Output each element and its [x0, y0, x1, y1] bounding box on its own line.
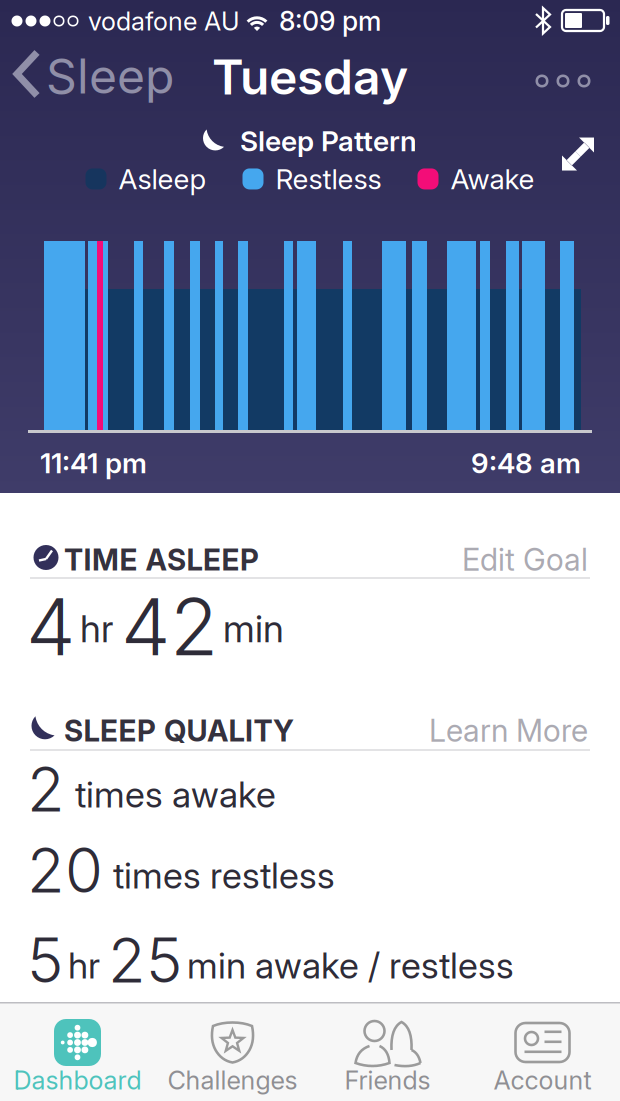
button[interactable]: Expand chart [560, 136, 596, 172]
staticText: Learn More [429, 712, 588, 749]
staticText: Sleep Pattern [240, 124, 417, 158]
staticText: times awake [75, 773, 276, 816]
button[interactable]: Sleep [12, 48, 142, 104]
staticText: Asleep [118, 162, 206, 196]
staticText: Awake [450, 162, 534, 196]
staticText: SLEEP QUALITY [64, 713, 294, 748]
staticText: Account [493, 1065, 591, 1096]
button[interactable]: Learn More [288, 712, 588, 749]
staticText: 11:41 pm [40, 446, 147, 480]
staticText: Restless [275, 162, 381, 196]
staticText: 42 [121, 579, 218, 674]
staticText: 25 [108, 923, 182, 997]
staticText: Tuesday [212, 48, 408, 106]
staticText: hr [68, 944, 100, 987]
staticText: 5 [27, 923, 63, 997]
staticText: Friends [344, 1065, 430, 1096]
staticText: Dashboard [13, 1065, 141, 1096]
staticText: times restless [113, 854, 335, 897]
staticText: 4 [26, 579, 75, 674]
staticText: vodafone AU [88, 6, 240, 37]
staticText: TIME ASLEEP [64, 542, 259, 577]
staticText: Sleep [46, 47, 174, 105]
button[interactable]: Edit Goal [288, 541, 588, 578]
staticText: Challenges [167, 1065, 297, 1096]
button[interactable]: Challenges [155, 1002, 310, 1101]
button[interactable]: More [535, 74, 591, 88]
staticText: 2 [27, 752, 65, 826]
staticText: min [223, 606, 284, 651]
staticText: 20 [27, 833, 103, 907]
staticText: 8:09 pm [279, 5, 381, 37]
staticText: hr [80, 606, 113, 651]
button[interactable]: Account [465, 1002, 620, 1101]
staticText: Edit Goal [462, 541, 588, 578]
button[interactable]: Dashboard [0, 1002, 155, 1101]
staticText: min awake / restless [187, 944, 514, 987]
staticText: 9:48 am [471, 446, 581, 480]
button[interactable]: Friends [310, 1002, 465, 1101]
